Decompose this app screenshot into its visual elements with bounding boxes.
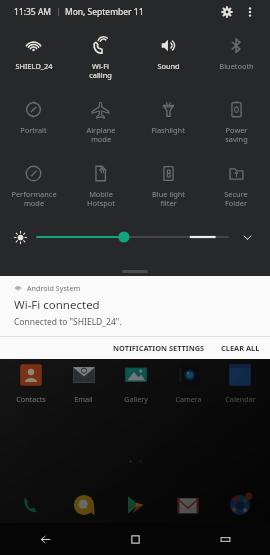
staticText: Airplane mode (86, 125, 116, 144)
staticText: Connected to "SHIELD_24". (14, 316, 122, 328)
button[interactable]: Phone (4, 490, 57, 548)
button[interactable]: Back (0, 523, 90, 555)
button[interactable]: Airplane mode (67, 92, 134, 156)
staticText: Portrait (20, 125, 47, 135)
button[interactable]: Settings (216, 1, 238, 23)
button[interactable]: Mobile Hotspot (67, 156, 134, 220)
button[interactable]: Camera (162, 360, 214, 418)
staticText: SHIELD_24 (15, 61, 53, 71)
button[interactable]: Secure Folder (202, 156, 270, 220)
button[interactable]: Portrait (0, 92, 67, 156)
button[interactable]: Wi-Fi calling (67, 28, 134, 92)
staticText: Email (74, 394, 93, 404)
staticText: Gallery (124, 394, 148, 404)
button[interactable]: More options (240, 2, 260, 22)
button[interactable]: Gallery (110, 360, 162, 418)
staticText: Camera (175, 394, 202, 404)
button[interactable]: Contacts (4, 360, 57, 418)
button[interactable]: Play Store (110, 490, 162, 548)
button[interactable]: Calendar (214, 360, 266, 418)
staticText: Android System (27, 283, 81, 293)
button[interactable]: Allo (57, 490, 110, 548)
button[interactable]: Recents (180, 523, 270, 555)
button[interactable]: Blue light filter (134, 156, 202, 220)
staticText: Secure Folder (224, 189, 248, 208)
button[interactable]: Flashlight (134, 92, 202, 156)
button[interactable]: Ish (214, 490, 266, 548)
staticText: Mon, September 11 (65, 6, 144, 18)
button[interactable]: Gmail (162, 490, 214, 548)
button[interactable]: Email (57, 360, 110, 418)
staticText: Sound (157, 61, 180, 71)
staticText: Mobile Hotspot (87, 189, 115, 208)
staticText: Wi-Fi connected (14, 297, 100, 313)
button[interactable]: SHIELD_24 (0, 28, 67, 92)
staticText: Power saving (225, 125, 248, 144)
button[interactable]: Expand brightness settings (14, 222, 256, 252)
staticText: 11:35 AM (14, 6, 52, 18)
staticText: Blue light filter (152, 189, 185, 208)
button[interactable]: NOTIFICATION SETTINGS (105, 339, 213, 357)
staticText: Bluetooth (219, 61, 254, 71)
button[interactable]: Sound (134, 28, 202, 92)
button[interactable]: Home (90, 523, 180, 555)
button[interactable]: Android System (0, 276, 270, 336)
staticText: Calendar (225, 394, 256, 404)
button[interactable]: Bluetooth (202, 28, 270, 92)
button[interactable]: CLEAR ALL (213, 339, 270, 357)
staticText: Contacts (16, 394, 46, 404)
staticText: CLEAR ALL (221, 343, 260, 353)
staticText: Flashlight (151, 125, 185, 135)
staticText: NOTIFICATION SETTINGS (113, 343, 205, 353)
button[interactable]: Power saving (202, 92, 270, 156)
staticText: Performance mode (11, 189, 57, 208)
button[interactable]: Performance mode (0, 156, 67, 220)
button[interactable]: Expand brightness settings (238, 228, 256, 246)
staticText: Wi-Fi calling (89, 61, 112, 80)
